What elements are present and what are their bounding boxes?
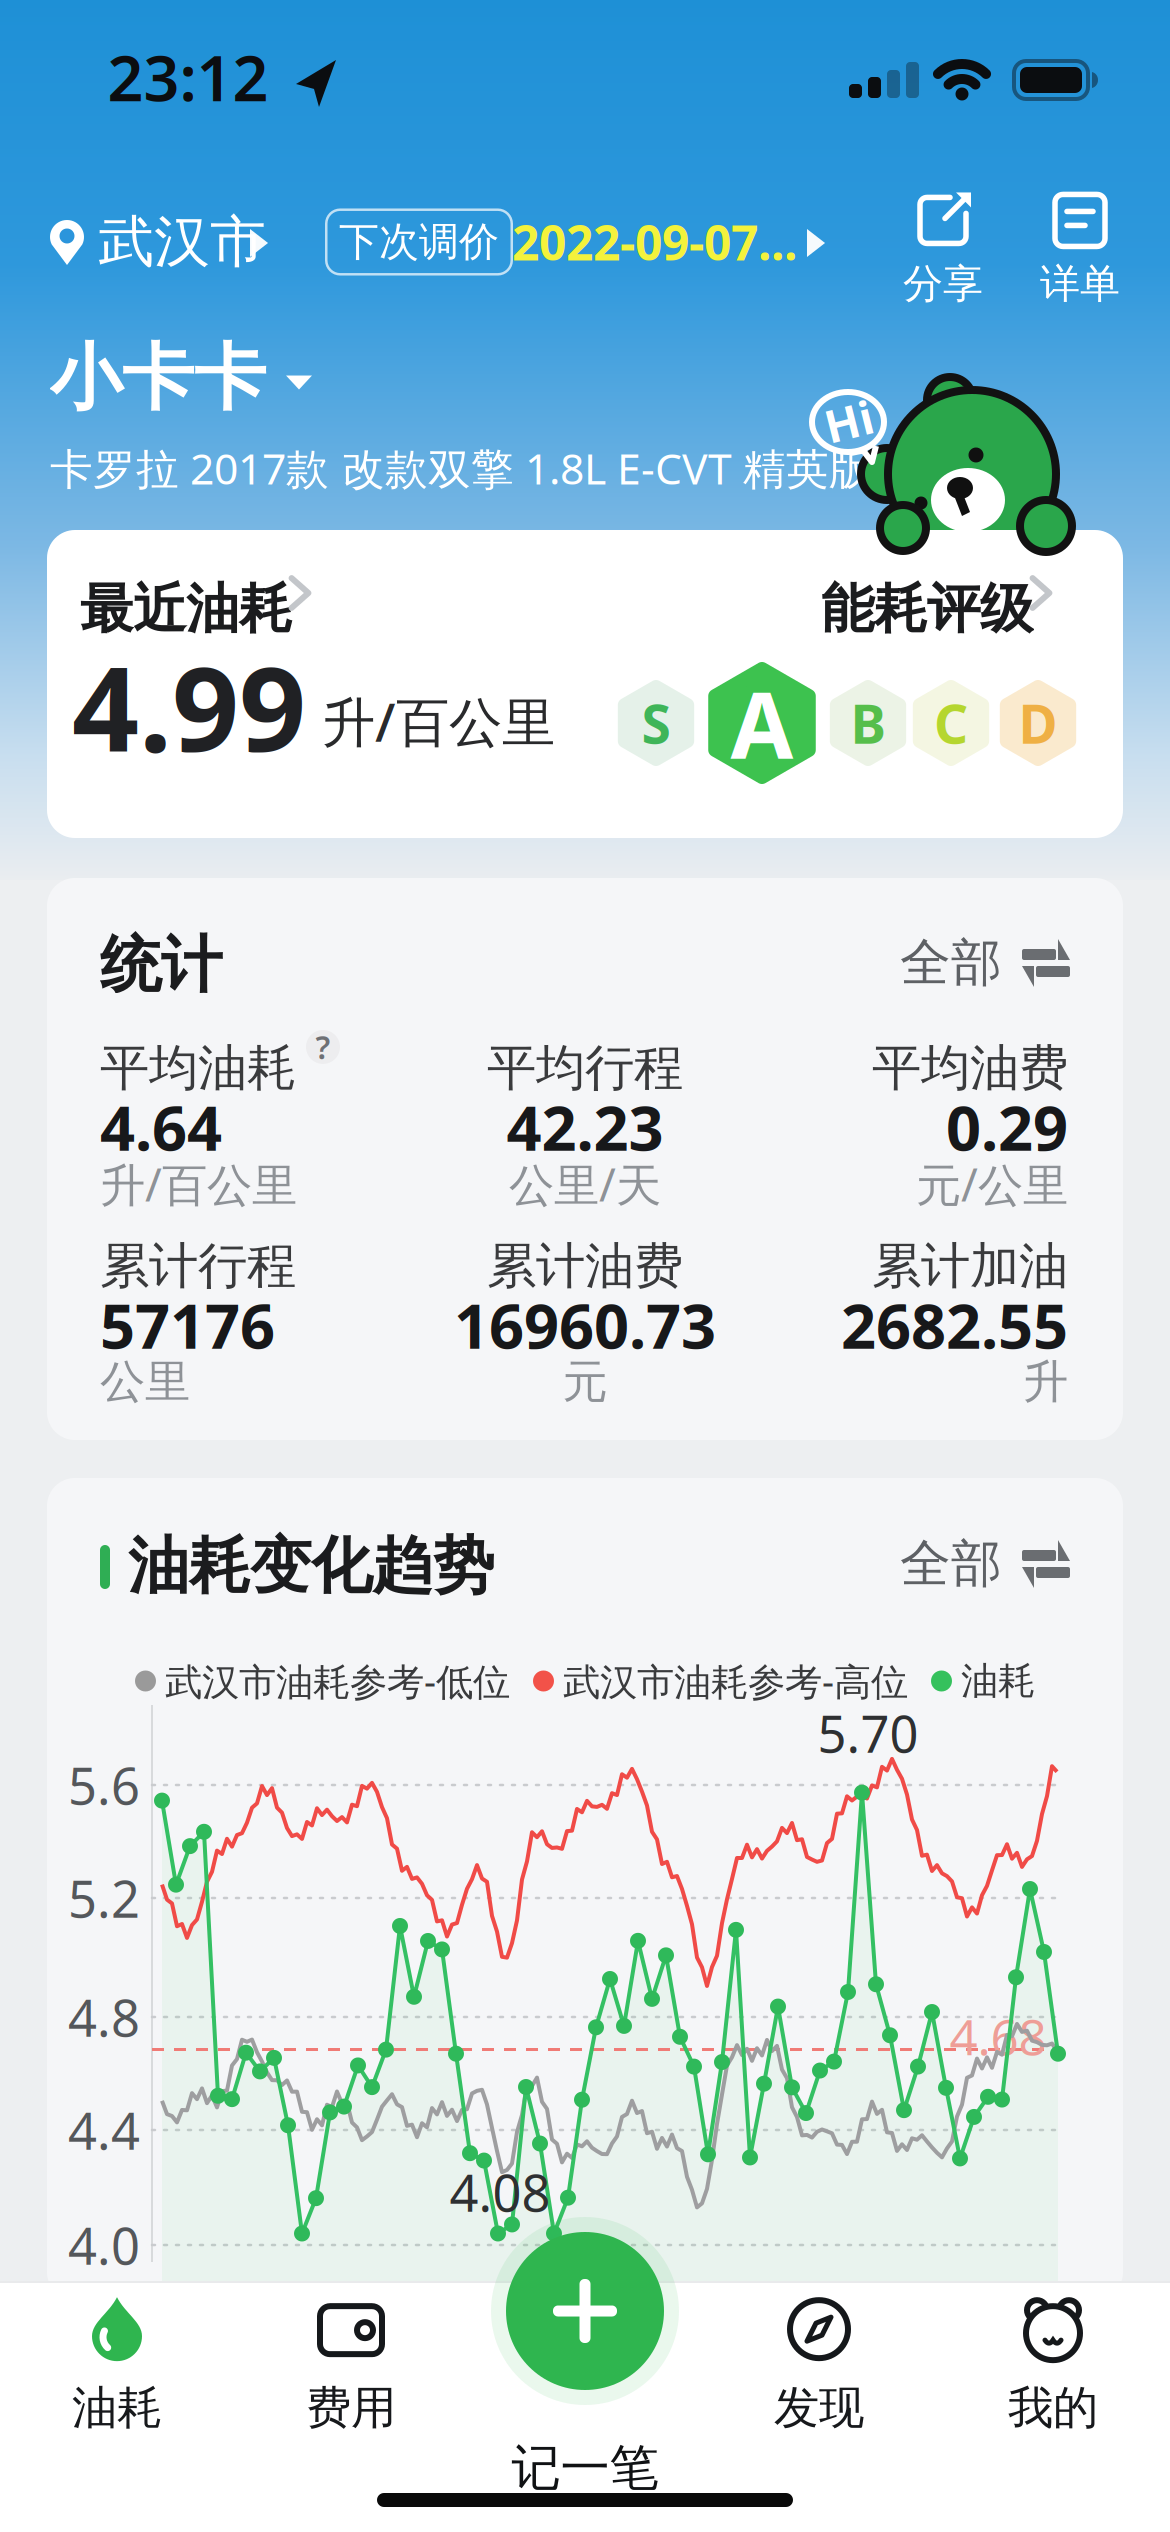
staticText: 我的 [1008,2380,1098,2436]
staticText: 42.23 [506,1086,663,1168]
staticText: 57176 [100,1284,275,1366]
staticText: B [850,688,885,758]
staticText: 费用 [306,2380,396,2436]
button[interactable]: 我的 [1008,2296,1098,2436]
staticText: 2682.55 [841,1284,1068,1366]
staticText: 4.68 [949,2003,1046,2069]
staticText: 统计 [100,927,222,1003]
staticText: 4.99 [72,628,306,784]
staticText: 公里/天 [509,1154,661,1214]
staticText: 5.6 [68,1751,140,1819]
staticText: 油耗变化趋势 [128,1528,494,1604]
button[interactable]: 详单 [1040,191,1120,308]
button[interactable]: 小卡卡 [50,334,470,422]
button[interactable]: 记一笔 [491,2217,679,2405]
staticText: 23:12 [107,35,268,119]
staticText: 全部 [900,1533,1002,1595]
staticText: 4.8 [68,1983,140,2051]
staticText: 4.64 [100,1086,222,1168]
staticText: 详单 [1040,259,1120,308]
staticText: 平均行程 [487,1038,683,1098]
button[interactable]: 发现 [774,2296,864,2436]
staticText: D [1018,688,1057,758]
staticText: C [934,688,968,758]
staticText: 最近油耗 [80,576,292,642]
button[interactable]: 2022-09-07... [512,210,842,274]
staticText: 武汉市 [98,208,266,276]
button[interactable]: 帮助 [306,1026,340,1068]
staticText: 升 [1023,1354,1068,1410]
staticText: 累计行程 [100,1236,296,1296]
button[interactable]: 武汉市 [48,208,368,276]
staticText: 4.0 [68,2211,140,2279]
staticText: 油耗 [961,1658,1035,1704]
staticText: 平均油费 [872,1038,1068,1098]
staticText: 全部 [900,932,1002,994]
staticText: 卡罗拉 2017款 改款双擎 1.8L E-CVT 精英版 [50,440,872,496]
staticText: 4.4 [68,2096,140,2164]
staticText: 武汉市油耗参考-高位 [563,1656,908,1706]
staticText: 4.08 [449,2158,550,2226]
staticText: 5.70 [817,1699,918,1767]
button[interactable]: 油耗 [72,2296,162,2436]
staticText: 升/百公里 [100,1154,297,1214]
button[interactable]: 分享 [903,191,983,308]
staticText: 累计油费 [487,1236,683,1296]
button[interactable]: 全部 [900,932,1070,994]
staticText: 小卡卡 [50,334,266,422]
staticText: 2022-09-07... [512,210,797,274]
staticText: 记一笔 [511,2438,658,2498]
staticText: 公里 [100,1354,190,1410]
button[interactable]: 全部 [900,1533,1070,1595]
staticText: S [641,688,670,758]
button[interactable]: 费用 [306,2296,396,2436]
staticText: 累计加油 [872,1236,1068,1296]
staticText: Hi [824,391,873,451]
staticText: 升/百公里 [322,686,555,756]
button[interactable]: 下次调价 [325,208,585,275]
staticText: 平均油耗 [100,1038,296,1098]
staticText: 元/公里 [916,1154,1068,1214]
staticText: ? [315,1026,330,1068]
staticText: 油耗 [72,2380,162,2436]
staticText: 能耗评级 [821,576,1033,642]
staticText: 下次调价 [339,217,499,266]
staticText: A [730,663,793,783]
staticText: 分享 [903,259,983,308]
staticText: 5.2 [68,1864,140,1932]
staticText: 武汉市油耗参考-低位 [165,1656,510,1706]
button[interactable]: 能耗评级 [705,576,1065,642]
staticText: 元 [562,1354,607,1410]
staticText: 16960.73 [454,1284,716,1366]
staticText: 发现 [774,2380,864,2436]
button[interactable]: 最近油耗 [80,576,440,642]
staticText: 0.29 [946,1086,1068,1168]
